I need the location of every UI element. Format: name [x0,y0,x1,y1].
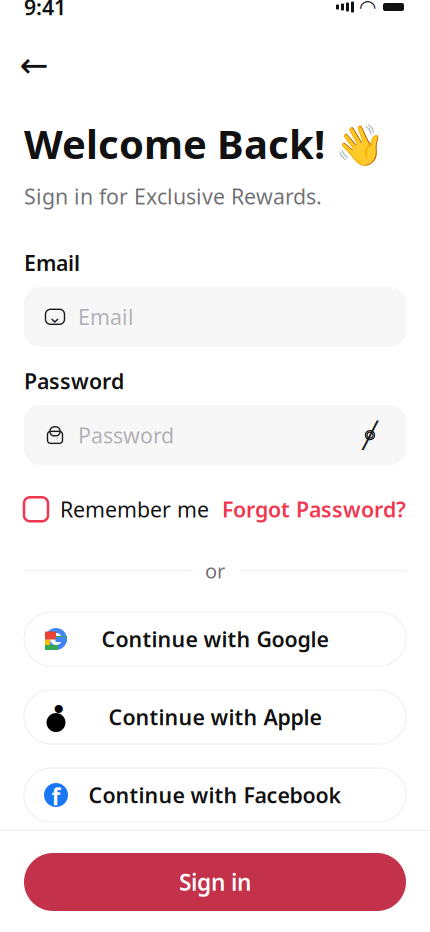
staticText: or [205,557,225,584]
staticText: f [51,781,60,811]
button[interactable]: Back [12,43,56,87]
staticText: Password [78,421,174,449]
staticText: ◠ [360,0,375,18]
staticText: Continue with Google [101,625,328,653]
staticText: ⌄ [47,307,62,327]
staticText: Continue with Facebook [88,781,341,809]
staticText: Sign in [179,867,251,897]
staticText: ● [54,702,63,714]
button[interactable]: Forgot Password? [222,487,406,531]
button[interactable]: f [24,768,406,822]
button[interactable]: ● [24,690,406,744]
staticText: Remember me [60,495,209,523]
staticText: Welcome Back! 👋 [24,117,385,170]
button[interactable]: Remember me [24,487,209,531]
staticText: Email [24,248,80,277]
staticText: Password [24,367,124,395]
staticText: Sign in for Exclusive Rewards. [24,182,322,210]
staticText: ← [19,45,48,85]
staticText: ╱ [362,421,377,449]
staticText: Email [78,303,134,331]
staticText: 9:41 [24,0,66,21]
button[interactable]: Continue with Google [24,612,406,666]
staticText: Forgot Password? [222,495,406,523]
button[interactable]: Show password [354,419,386,451]
button[interactable]: Sign in [24,853,406,911]
staticText: Continue with Apple [108,703,321,731]
